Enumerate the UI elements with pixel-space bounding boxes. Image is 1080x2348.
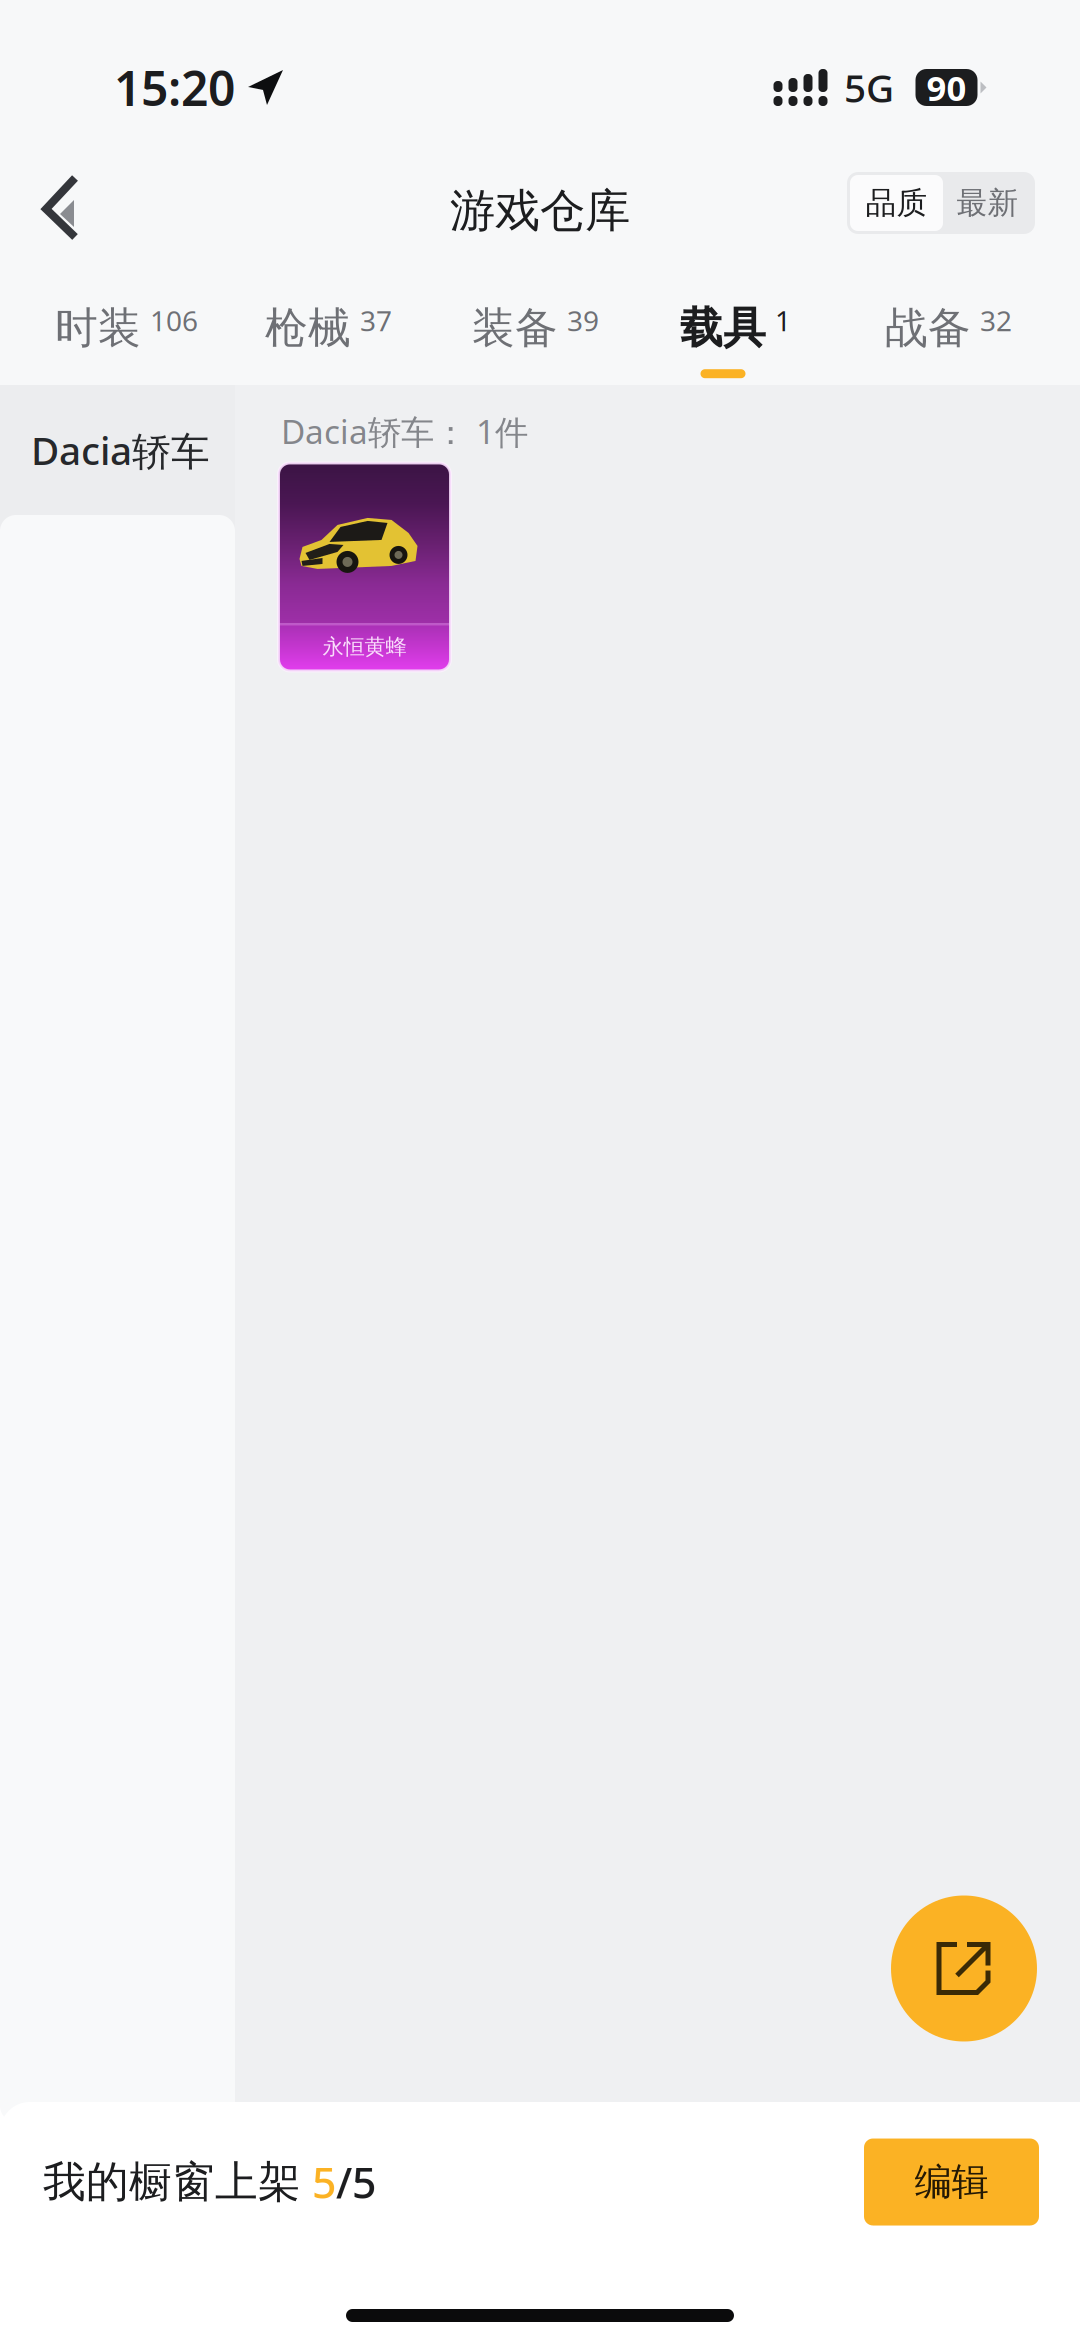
staticText: 90 [926,64,966,110]
button[interactable]: 永恒黄蜂 [277,461,452,672]
staticText: 5G [844,62,894,113]
staticText: 枪械 [265,302,351,354]
staticText: 战备 [885,302,971,354]
button[interactable]: 时装 [55,302,198,378]
button[interactable]: 载具 [680,302,791,378]
staticText: 编辑 [914,2159,988,2205]
staticText: 39 [567,302,599,339]
staticText: Dacia轿车 [31,424,210,476]
staticText: 装备 [472,302,558,354]
staticText: 载具 [680,302,766,354]
staticText: 时装 [55,302,141,354]
staticText: 永恒黄蜂 [322,634,406,660]
button[interactable]: 品质 [850,175,943,231]
staticText: 游戏仓库 [450,183,630,239]
staticText: 37 [360,302,392,339]
staticText: 1 [775,302,791,339]
button[interactable]: 装备 [472,302,599,378]
button[interactable]: Dacia轿车 [0,385,235,515]
button[interactable]: 编辑 [864,2138,1039,2225]
staticText: 106 [150,302,198,339]
button[interactable]: 最新 [943,175,1032,231]
staticText: 最新 [956,184,1018,222]
staticText: 5 [301,2154,336,2210]
button[interactable]: 枪械 [265,302,392,378]
staticText: /5 [336,2154,376,2210]
button[interactable]: Back [0,155,108,267]
staticText: 我的橱窗上架 [43,2156,301,2208]
staticText: 15:20 [114,56,235,119]
staticText: 32 [980,302,1012,339]
staticText: 品质 [865,184,927,222]
staticText: Dacia轿车： 1件 [281,409,528,453]
button[interactable]: 战备 [885,302,1012,378]
button[interactable]: Share [891,1895,1037,2042]
